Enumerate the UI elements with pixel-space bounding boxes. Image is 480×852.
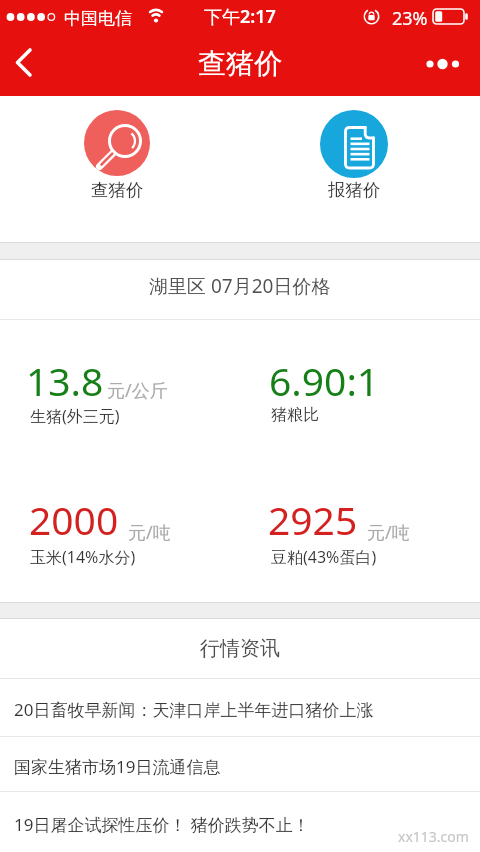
staticText: 元/公斤 [107, 378, 168, 403]
staticText: 下午2:17 [204, 4, 276, 29]
staticText: 元/吨 [367, 520, 410, 545]
staticText: 猪粮比 [271, 405, 319, 425]
staticText: 19日屠企试探性压价！ 猪价跌势不止！ [14, 813, 310, 836]
staticText: 查猪价 [91, 179, 144, 201]
button[interactable]: 报猪价 [314, 104, 394, 206]
button[interactable] [424, 36, 480, 96]
staticText: 国家生猪市场19日流通信息 [14, 755, 221, 778]
staticText: 23% [392, 6, 428, 31]
staticText: 生猪(外三元) [30, 405, 120, 427]
staticText: 豆粕(43%蛋白) [271, 546, 377, 568]
staticText: 湖里区 07月20日价格 [149, 273, 331, 299]
staticText: 13.8 [26, 354, 104, 407]
staticText: 报猪价 [328, 179, 381, 201]
button[interactable]: 查猪价 [77, 104, 157, 206]
staticText: 行情资讯 [200, 636, 280, 661]
staticText: 元/吨 [128, 520, 171, 545]
button[interactable]: 20日畜牧早新闻：天津口岸上半年进口猪价上涨 [0, 679, 480, 737]
staticText: 2925 [268, 493, 358, 546]
staticText: 2000 [29, 493, 119, 546]
staticText: 20日畜牧早新闻：天津口岸上半年进口猪价上涨 [14, 698, 374, 721]
staticText: 6.90:1 [269, 354, 380, 407]
staticText: 中国电信 [64, 8, 132, 29]
button[interactable]: 19日屠企试探性压价！ 猪价跌势不止！ [0, 792, 480, 852]
staticText: 查猪价 [198, 46, 282, 81]
button[interactable] [0, 36, 48, 96]
button[interactable]: 国家生猪市场19日流通信息 [0, 737, 480, 792]
staticText: 玉米(14%水分) [30, 546, 136, 568]
staticText: xx113.com [398, 827, 469, 846]
